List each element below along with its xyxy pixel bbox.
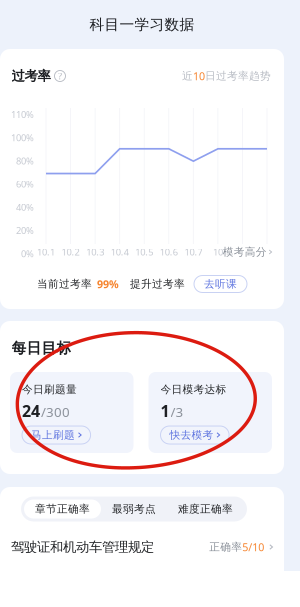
button[interactable]: 模考高分 [220, 245, 272, 259]
staticText: 日过考率趋势 [205, 69, 271, 82]
staticText: 100% [11, 131, 34, 144]
staticText: ? [58, 70, 62, 82]
staticText: 今日模考达标 [160, 383, 226, 396]
staticText: 60% [16, 178, 34, 190]
staticText: 正确率 [209, 540, 242, 553]
staticText: 40% [16, 201, 34, 213]
staticText: 当前过考率 [37, 277, 92, 290]
staticText: 提升过考率 [130, 277, 185, 290]
staticText: 10.3 [86, 246, 104, 258]
staticText: 10.5 [135, 246, 153, 258]
staticText: 10.7 [184, 246, 202, 258]
button[interactable]: 快去模考 [160, 426, 229, 444]
button[interactable]: 马上刷题 [22, 426, 91, 444]
button[interactable]: 驾驶证和机动车管理规定 [0, 536, 284, 558]
staticText: 99% [97, 277, 119, 291]
button[interactable]: 难度正确率 [167, 499, 244, 518]
staticText: 10 [193, 69, 205, 83]
staticText: 章节正确率 [35, 502, 90, 515]
staticText: 10.4 [111, 246, 129, 258]
staticText: /3 [170, 403, 183, 421]
staticText: 1 [160, 400, 169, 421]
staticText: 今日刷题量 [22, 383, 77, 396]
staticText: 每日目标 [11, 339, 71, 357]
staticText: 科目一学习数据 [89, 15, 194, 33]
staticText: 近 [182, 69, 193, 82]
staticText: 10.2 [62, 246, 80, 258]
staticText: 马上刷题 [31, 428, 75, 441]
staticText: 10 [213, 246, 223, 258]
staticText: 难度正确率 [178, 502, 233, 515]
button[interactable]: 最弱考点 [101, 499, 167, 518]
staticText: /300 [41, 403, 70, 421]
button[interactable]: 章节正确率 [24, 499, 101, 518]
staticText: 24 [22, 400, 40, 421]
staticText: 5/10 [242, 540, 264, 554]
staticText: 快去模考 [169, 428, 213, 441]
button[interactable]: 去听课 [194, 275, 247, 292]
staticText: 0% [21, 247, 34, 260]
staticText: 20% [16, 224, 34, 237]
staticText: 驾驶证和机动车管理规定 [11, 539, 154, 555]
staticText: 去听课 [204, 277, 237, 290]
staticText: 模考高分 [223, 245, 267, 258]
staticText: 110% [11, 108, 34, 121]
staticText: 最弱考点 [112, 502, 156, 515]
staticText: 过考率 [11, 68, 50, 84]
staticText: 10.6 [160, 246, 178, 258]
staticText: 10.1 [37, 246, 55, 258]
staticText: 80% [16, 155, 34, 167]
